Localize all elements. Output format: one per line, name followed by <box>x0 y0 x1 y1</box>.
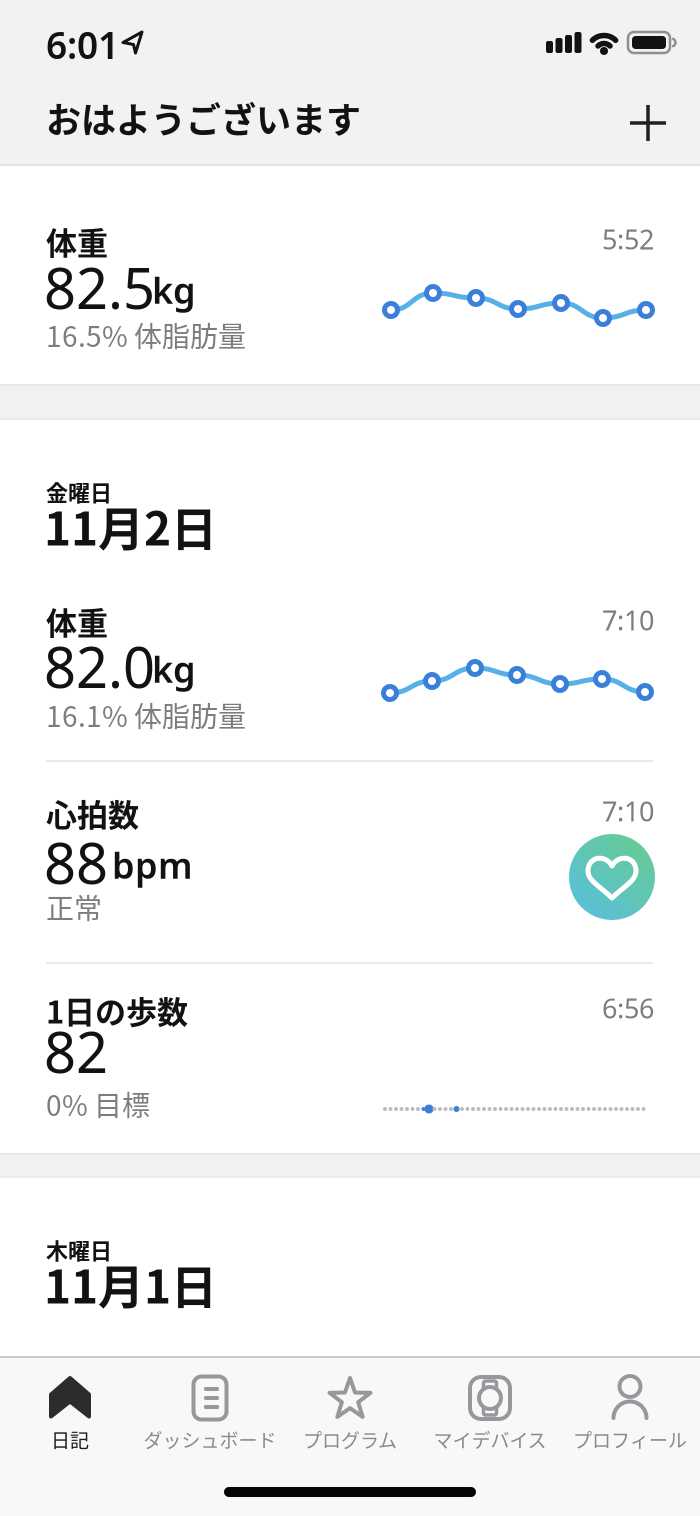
staticText: 金曜日 <box>46 476 112 507</box>
staticText: 体重 <box>46 219 108 263</box>
staticText: kg <box>152 645 196 693</box>
staticText: 1日の歩数 <box>46 988 188 1032</box>
staticText: 心拍数 <box>46 791 139 835</box>
button[interactable]: ダッシュボード <box>140 1360 280 1480</box>
staticText: 0% 目標 <box>46 1084 150 1123</box>
staticText: 11月1日 <box>44 1251 217 1316</box>
staticText: ダッシュボード <box>143 1426 276 1453</box>
staticText: 82.0 <box>44 629 155 703</box>
staticText: 7:10 <box>602 793 654 829</box>
staticText: プロフィール <box>573 1426 687 1453</box>
button[interactable]: マイデバイス <box>420 1360 560 1480</box>
staticText: 日記 <box>51 1426 89 1453</box>
button[interactable]: 心拍数 <box>0 762 700 962</box>
staticText: 5:52 <box>602 221 654 257</box>
staticText: bpm <box>112 841 193 889</box>
button[interactable]: プロフィール <box>560 1360 700 1480</box>
staticText: kg <box>152 266 196 314</box>
staticText: 88 <box>44 825 108 899</box>
staticText: 体重 <box>46 599 108 643</box>
staticText: おはようございます <box>46 93 361 142</box>
button[interactable]: 日記 <box>0 1360 140 1480</box>
staticText: 6:56 <box>602 990 654 1026</box>
staticText: 82 <box>44 1014 108 1088</box>
staticText: 11月2日 <box>44 493 217 558</box>
staticText: 正常 <box>46 887 102 926</box>
staticText: 82.5 <box>44 250 155 324</box>
button[interactable]: 体重 <box>0 576 700 760</box>
staticText: 7:10 <box>602 602 654 638</box>
staticText: 木曜日 <box>46 1234 112 1265</box>
staticText: 16.5% 体脂肪量 <box>46 315 246 354</box>
button[interactable]: 1日の歩数 <box>0 964 700 1153</box>
button[interactable]: 追加 <box>624 99 672 147</box>
button[interactable]: プログラム <box>280 1360 420 1480</box>
staticText: プログラム <box>303 1426 397 1453</box>
staticText: マイデバイス <box>433 1426 546 1453</box>
button[interactable]: 体重 <box>0 166 700 384</box>
staticText: 6:01 <box>46 20 119 69</box>
staticText: 16.1% 体脂肪量 <box>46 695 246 734</box>
